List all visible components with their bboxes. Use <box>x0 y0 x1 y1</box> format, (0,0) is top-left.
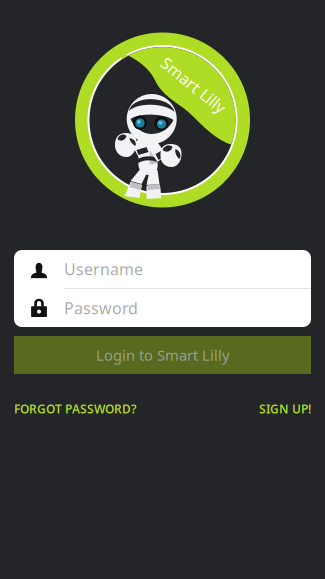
staticText: Username <box>64 258 143 280</box>
button[interactable]: FORGOT PASSWORD? <box>14 401 137 417</box>
button[interactable]: SIGN UP! <box>259 401 311 417</box>
staticText: Smart Lilly <box>154 74 232 96</box>
staticText: SIGN UP! <box>259 401 311 417</box>
button[interactable]: Login to Smart Lilly <box>14 336 311 374</box>
staticText: Login to Smart Lilly <box>96 345 229 365</box>
staticText: Password <box>64 297 138 319</box>
staticText: FORGOT PASSWORD? <box>14 401 137 417</box>
